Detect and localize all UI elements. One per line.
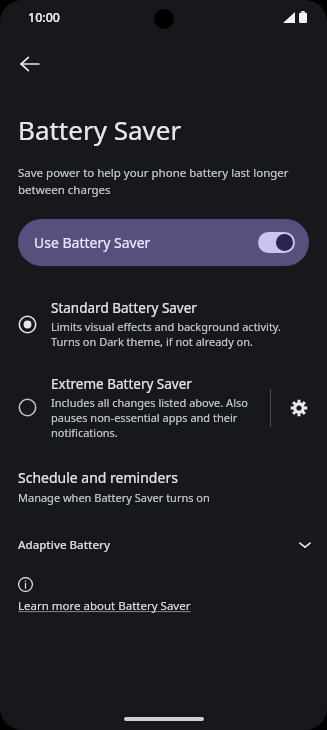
staticText: Includes all changes listed above. Also … [51,395,264,440]
staticText: Learn more about Battery Saver [18,598,191,614]
staticText: Manage when Battery Saver turns on [18,490,210,505]
button[interactable]: Schedule and reminders [0,464,327,509]
staticText: Extreme Battery Saver [51,375,192,393]
button[interactable]: Use Battery Saver [18,219,309,266]
button[interactable]: Standard Battery Saver [0,293,327,355]
staticText: Standard Battery Saver [51,299,197,317]
staticText: Save power to help your phone battery la… [18,165,307,197]
staticText: 10:00 [28,9,61,26]
staticText: Adaptive Battery [18,537,297,553]
staticText: Battery Saver [18,112,182,147]
button[interactable]: Extreme Battery Saver settings [271,380,327,436]
button[interactable]: Back [10,44,50,84]
button[interactable]: Learn more about Battery Saver [18,598,191,614]
staticText: Limits visual effects and background act… [51,319,303,349]
staticText: Use Battery Saver [34,233,258,252]
staticText: Schedule and reminders [18,468,178,487]
button[interactable]: Extreme Battery Saver [0,369,270,446]
button[interactable]: Adaptive Battery [0,531,327,559]
